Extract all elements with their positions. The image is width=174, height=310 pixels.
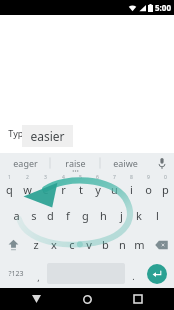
staticText: q [6,182,13,197]
button[interactable]: x [45,230,63,259]
staticText: u [111,182,118,197]
staticText: 2 [26,174,29,181]
button[interactable]: b [97,230,114,259]
staticText: m [134,237,145,252]
button[interactable]: Recents [123,288,153,310]
button[interactable]: Enter [147,264,167,284]
staticText: t [79,182,83,197]
button[interactable]: eaiwe [100,153,150,173]
staticText: ?123 [8,269,24,279]
staticText: 5:00 [155,2,171,13]
staticText: h [100,208,107,223]
staticText: x [51,237,57,252]
button[interactable]: 9 [140,173,157,201]
staticText: 0 [164,174,167,181]
staticText: p [162,182,169,197]
button[interactable]: n [114,230,131,259]
button[interactable]: d [42,201,59,230]
button[interactable]: k [130,201,148,230]
button[interactable]: m [131,230,148,259]
button[interactable]: ?123 [2,261,30,286]
button[interactable]: . [125,261,142,286]
button[interactable]: Backspace [148,230,174,259]
staticText: a [13,208,20,223]
staticText: 8 [130,174,133,181]
staticText: z [33,237,39,252]
button[interactable]: z [27,230,45,259]
staticText: 6 [96,174,99,181]
button[interactable]: 1 [0,173,18,201]
staticText: v [86,237,92,252]
staticText: e [42,182,49,197]
button[interactable]: l [148,201,166,230]
button[interactable]: 6 [89,173,106,201]
staticText: r [61,182,66,197]
staticText: i [130,182,133,197]
button[interactable]: 3 [36,173,54,201]
staticText: y [95,182,101,197]
staticText: 5 [79,174,82,181]
button[interactable]: g [76,201,94,230]
staticText: raise [65,157,86,169]
button[interactable]: Shift [0,230,27,259]
staticText: j [120,208,123,223]
staticText: b [102,237,109,252]
button[interactable]: h [94,201,112,230]
button[interactable]: j [112,201,130,230]
button[interactable]: a [8,201,25,230]
button[interactable]: 2 [18,173,36,201]
staticText: s [31,208,37,223]
button[interactable]: Back [21,288,51,310]
button[interactable]: f [59,201,76,230]
staticText: l [156,208,159,223]
staticText: k [136,208,142,223]
button[interactable]: v [80,230,97,259]
staticText: g [82,208,89,223]
button[interactable]: c [63,230,80,259]
staticText: 4 [62,174,65,181]
staticText: d [47,208,54,223]
staticText: easier [30,128,65,144]
button[interactable]: 5 [72,173,89,201]
button[interactable]: raise [50,153,100,173]
staticText: . [132,270,135,282]
button[interactable]: Voice input [150,153,174,173]
button[interactable]: 4 [54,173,72,201]
staticText: o [145,182,152,197]
button[interactable]: eager [0,153,50,173]
staticText: , [37,271,40,283]
staticText: eaiwe [113,157,138,169]
staticText: 9 [147,174,150,181]
staticText: 7 [113,174,116,181]
staticText: 1 [8,174,11,181]
staticText: Typing is [8,127,46,139]
staticText: n [119,237,126,252]
button[interactable]: Home [72,288,102,310]
button[interactable]: 0 [157,173,174,201]
button[interactable]: , [30,261,47,286]
staticText: c [69,237,75,252]
staticText: f [66,208,70,223]
button[interactable]: 8 [123,173,140,201]
button[interactable]: 7 [106,173,123,201]
staticText: 3 [44,174,47,181]
button[interactable]: easier [30,128,65,144]
button[interactable]: s [25,201,42,230]
staticText: eager [13,157,38,169]
staticText: w [23,182,32,197]
